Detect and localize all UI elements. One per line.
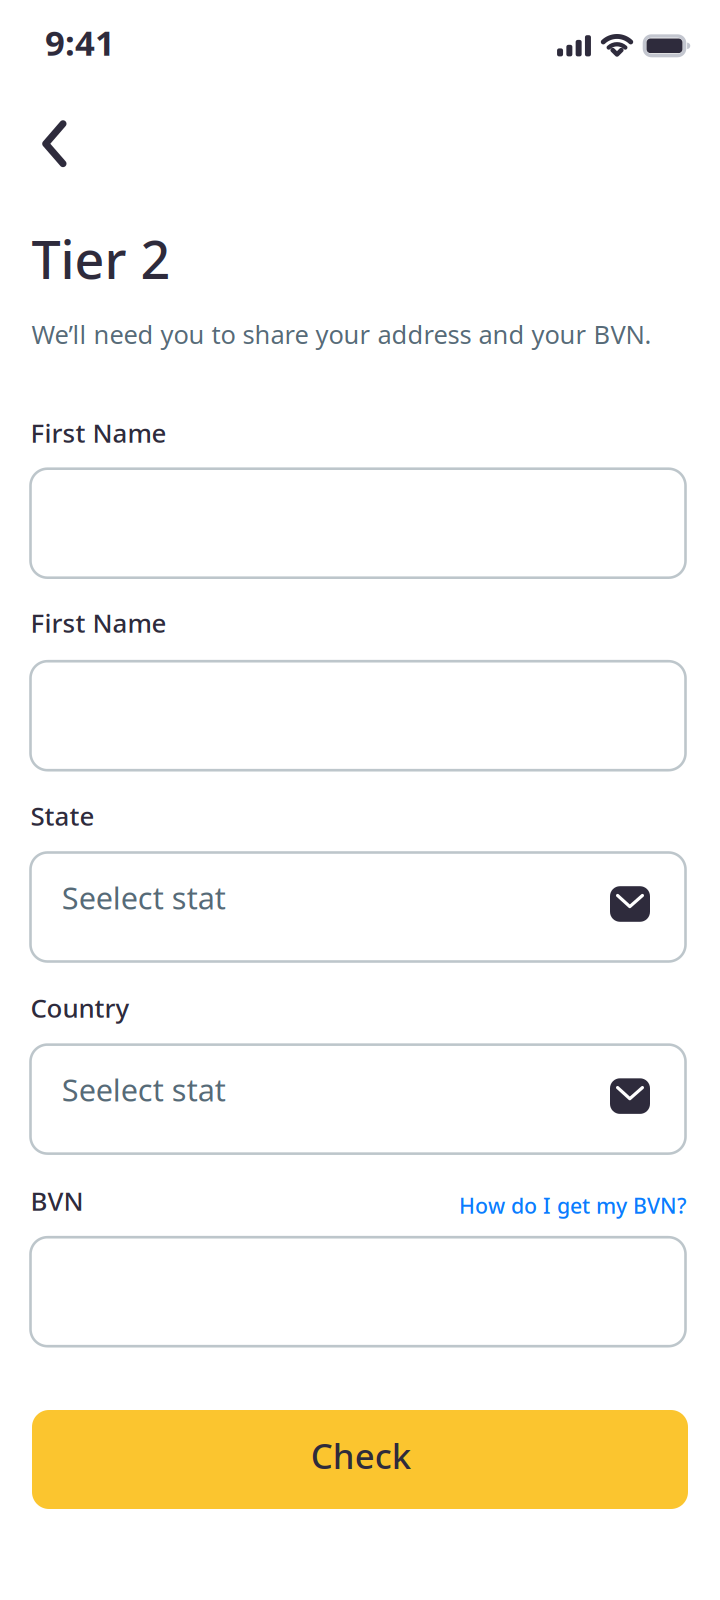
staticText: BVN (31, 1183, 84, 1218)
staticText: First Name (31, 415, 167, 450)
staticText: Seelect stat (62, 1069, 226, 1111)
staticText: How do I get my BVN? (459, 1191, 687, 1220)
button[interactable]: Text field (30, 469, 685, 578)
staticText: Seelect stat (62, 877, 226, 918)
button[interactable]: Text field (30, 1237, 685, 1346)
staticText: Check (311, 1432, 411, 1479)
button[interactable]: Text field (30, 661, 685, 770)
button[interactable]: Seelect stat (30, 1045, 685, 1154)
staticText: First Name (31, 605, 167, 640)
button[interactable]: Back (22, 102, 86, 186)
staticText: State (31, 798, 95, 833)
staticText: Country (31, 990, 130, 1025)
staticText: We’ll need you to share your address and… (32, 317, 652, 351)
staticText: Tier 2 (32, 223, 171, 294)
button[interactable]: Check (32, 1410, 688, 1509)
staticText: 9:41 (45, 19, 115, 66)
button[interactable]: How do I get my BVN? (459, 1191, 687, 1220)
button[interactable]: Seelect stat (30, 852, 685, 961)
